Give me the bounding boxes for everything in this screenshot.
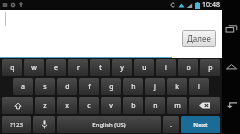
staticText: t: [99, 63, 102, 73]
staticText: z: [43, 101, 47, 111]
button[interactable]: x: [57, 97, 77, 114]
button[interactable]: d: [57, 78, 77, 95]
button[interactable]: j: [145, 78, 165, 95]
staticText: w: [31, 63, 37, 73]
button[interactable]: v: [101, 97, 121, 114]
button[interactable]: b: [123, 97, 143, 114]
button[interactable]: Back: [222, 96, 240, 114]
staticText: i: [165, 63, 167, 73]
button[interactable]: u: [134, 59, 154, 76]
button[interactable]: .: [163, 116, 179, 133]
button[interactable]: l: [189, 78, 209, 95]
staticText: n: [153, 101, 158, 111]
button[interactable]: i: [156, 59, 176, 76]
staticText: p: [208, 63, 213, 73]
button[interactable]: t: [90, 59, 110, 76]
staticText: k: [175, 82, 179, 92]
button[interactable]: Voice input: [33, 116, 55, 133]
staticText: 10:48: [202, 0, 220, 10]
button[interactable]: w: [24, 59, 44, 76]
staticText: ?123: [10, 121, 23, 129]
staticText: g: [109, 82, 114, 92]
staticText: English (US): [92, 121, 126, 129]
button[interactable]: ?123: [2, 116, 31, 133]
staticText: o: [186, 63, 191, 73]
staticText: f: [88, 82, 91, 92]
button[interactable]: English (US): [57, 116, 161, 133]
staticText: h: [131, 82, 136, 92]
button[interactable]: h: [123, 78, 143, 95]
staticText: c: [87, 101, 91, 111]
button[interactable]: y: [112, 59, 132, 76]
button[interactable]: q: [2, 59, 22, 76]
staticText: b: [131, 101, 136, 111]
staticText: x: [65, 101, 69, 111]
staticText: v: [109, 101, 113, 111]
staticText: r: [77, 63, 80, 73]
button[interactable]: e: [46, 59, 66, 76]
staticText: e: [54, 63, 58, 73]
staticText: Далее: [187, 33, 211, 44]
staticText: .: [170, 120, 172, 130]
button[interactable]: r: [68, 59, 88, 76]
button[interactable]: o: [178, 59, 198, 76]
staticText: Next: [193, 121, 208, 129]
staticText: j: [154, 82, 156, 92]
button[interactable]: k: [167, 78, 187, 95]
staticText: u: [142, 63, 147, 73]
button[interactable]: f: [79, 78, 99, 95]
button[interactable]: Shift: [2, 97, 33, 114]
staticText: d: [65, 82, 70, 92]
button[interactable]: Next: [181, 116, 220, 133]
staticText: y: [120, 63, 124, 73]
button[interactable]: m: [167, 97, 187, 114]
staticText: m: [174, 101, 181, 111]
button[interactable]: Backspace: [189, 97, 220, 114]
button[interactable]: p: [200, 59, 220, 76]
staticText: a: [21, 82, 25, 92]
button[interactable]: a: [13, 78, 33, 95]
staticText: q: [10, 63, 15, 73]
button[interactable]: Далее: [182, 30, 216, 47]
staticText: l: [198, 82, 200, 92]
button[interactable]: Home: [222, 58, 240, 76]
button[interactable]: n: [145, 97, 165, 114]
button[interactable]: c: [79, 97, 99, 114]
button[interactable]: g: [101, 78, 121, 95]
button[interactable]: Recents: [222, 20, 240, 38]
button[interactable]: z: [35, 97, 55, 114]
staticText: s: [43, 82, 47, 92]
button[interactable]: s: [35, 78, 55, 95]
